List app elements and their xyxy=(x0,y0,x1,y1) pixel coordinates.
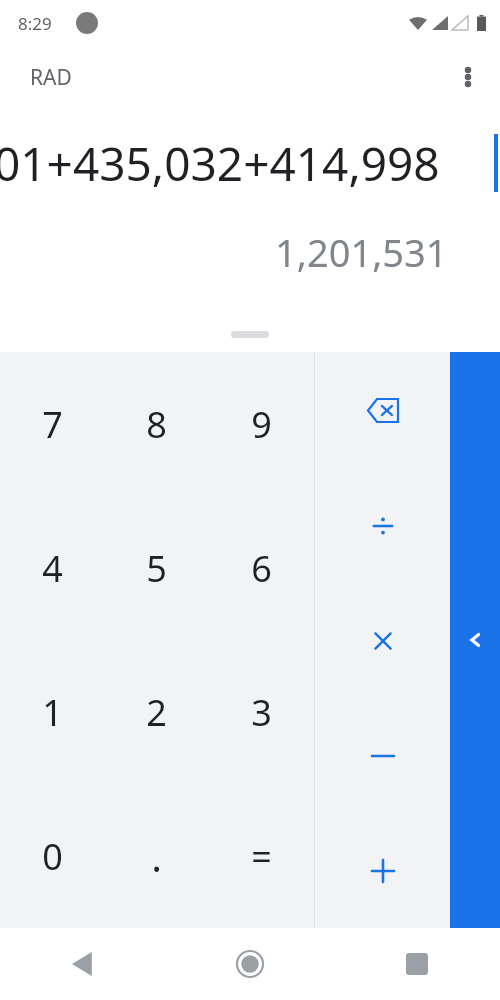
staticText: RAD xyxy=(30,63,72,92)
button[interactable]: 8 xyxy=(104,352,209,496)
button[interactable]: Expand history xyxy=(231,331,269,338)
staticText: . xyxy=(151,829,162,883)
staticText: 7 xyxy=(42,400,63,449)
staticText: 1 xyxy=(42,688,63,737)
staticText: 9 xyxy=(251,400,272,449)
button[interactable]: Subtract xyxy=(315,698,450,813)
button[interactable]: = xyxy=(209,784,314,928)
staticText: = xyxy=(251,832,272,881)
button[interactable]: Divide xyxy=(315,468,450,583)
staticText: 2 xyxy=(146,688,167,737)
button[interactable]: 9 xyxy=(209,352,314,496)
staticText: 4 xyxy=(42,544,63,593)
button[interactable]: More options xyxy=(444,53,492,101)
staticText: 6 xyxy=(251,544,272,593)
button[interactable]: 3 xyxy=(209,640,314,784)
staticText: 8:29 xyxy=(18,12,52,35)
button[interactable]: 5 xyxy=(104,496,209,640)
button[interactable]: Back xyxy=(0,928,166,1000)
staticText: 5 xyxy=(146,544,167,593)
staticText: 0 xyxy=(42,832,63,881)
button[interactable]: . xyxy=(104,784,209,928)
button[interactable]: 7 xyxy=(0,352,104,496)
button[interactable]: 0 xyxy=(0,784,104,928)
staticText: 3 xyxy=(251,688,272,737)
button[interactable]: Home xyxy=(166,928,333,1000)
button[interactable]: 1 xyxy=(0,640,104,784)
button[interactable]: 4 xyxy=(0,496,104,640)
button[interactable]: RAD xyxy=(0,55,86,100)
button[interactable]: Show advanced pad xyxy=(450,352,500,928)
staticText: 8 xyxy=(146,400,167,449)
button[interactable]: Delete xyxy=(315,352,450,468)
button[interactable]: Multiply xyxy=(315,583,450,698)
button[interactable]: Recent apps xyxy=(333,928,500,1000)
button[interactable]: 6 xyxy=(209,496,314,640)
button[interactable]: Add xyxy=(315,813,450,928)
staticText: 01+435,032+414,998 xyxy=(0,132,440,195)
staticText: 1,201,531 xyxy=(275,226,448,278)
button[interactable]: 2 xyxy=(104,640,209,784)
